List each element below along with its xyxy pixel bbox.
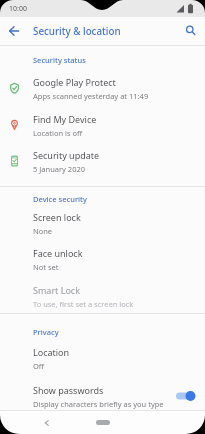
button[interactable]: Show passwords	[0, 375, 205, 410]
staticText: 5 January 2020	[33, 164, 86, 174]
staticText: Security update	[33, 149, 100, 161]
staticText: Show passwords	[33, 384, 104, 396]
staticText: 10:00	[9, 4, 27, 14]
button[interactable]: Location	[0, 337, 205, 375]
button[interactable]: Smart Lock	[0, 277, 205, 313]
staticText: Security & location	[33, 25, 121, 38]
staticText: Display characters briefly as you type	[33, 399, 164, 409]
staticText: Find My Device	[33, 113, 97, 125]
button[interactable]	[96, 420, 110, 425]
staticText: Screen lock	[33, 211, 81, 223]
button[interactable]	[3, 20, 25, 42]
staticText: Google Play Protect	[33, 76, 116, 88]
staticText: None	[33, 226, 53, 236]
button[interactable]	[180, 20, 202, 42]
button[interactable]: Find My Device	[0, 104, 205, 140]
staticText: Apps scanned yesterday at 11:49	[33, 91, 149, 101]
button[interactable]: Screen lock	[0, 204, 205, 240]
button[interactable]	[40, 416, 54, 430]
button[interactable]: Face unlock	[0, 240, 205, 277]
button[interactable]	[176, 390, 196, 402]
staticText: Not set	[33, 262, 59, 272]
staticText: Location	[33, 346, 70, 358]
staticText: Privacy	[33, 327, 59, 337]
staticText: Smart Lock	[33, 284, 80, 296]
button[interactable]: Google Play Protect	[0, 67, 205, 104]
staticText: To use, first set a screen lock	[33, 299, 134, 309]
staticText: Device security	[33, 194, 87, 204]
button[interactable]: Security update	[0, 140, 205, 176]
staticText: Off	[33, 361, 45, 371]
staticText: Face unlock	[33, 247, 83, 259]
staticText: Security status	[33, 55, 86, 65]
staticText: Location is off	[33, 128, 83, 138]
